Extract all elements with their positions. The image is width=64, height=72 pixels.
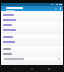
button[interactable] xyxy=(1,34,63,39)
button[interactable] xyxy=(1,39,63,44)
button[interactable] xyxy=(1,51,63,56)
button[interactable] xyxy=(1,22,63,27)
button[interactable]: More options xyxy=(59,7,62,10)
button[interactable] xyxy=(1,27,63,32)
button[interactable]: Search xyxy=(54,7,57,10)
button[interactable]: Navigate up xyxy=(1,6,6,11)
button[interactable] xyxy=(3,57,61,60)
button[interactable]: Recent apps xyxy=(47,67,51,71)
button[interactable] xyxy=(1,12,63,17)
button[interactable]: Back xyxy=(13,67,17,71)
button[interactable] xyxy=(1,46,63,51)
button[interactable] xyxy=(1,17,63,22)
button[interactable]: Home xyxy=(30,67,34,71)
